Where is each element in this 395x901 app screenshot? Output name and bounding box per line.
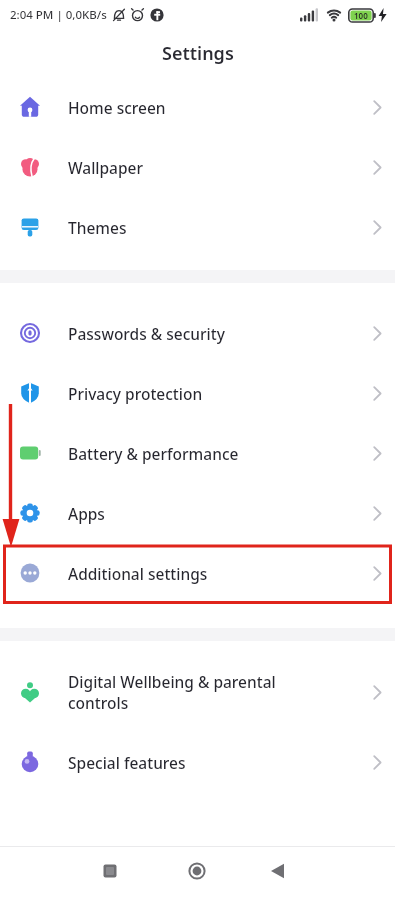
button[interactable]: Digital Wellbeing & parental controls xyxy=(0,660,395,724)
staticText: Privacy protection xyxy=(68,383,373,404)
button[interactable]: Additional settings xyxy=(0,543,395,603)
staticText: Special features xyxy=(68,752,373,773)
button[interactable] xyxy=(86,847,134,895)
button[interactable]: Privacy protection xyxy=(0,363,395,423)
staticText: Home screen xyxy=(68,97,373,118)
staticText: 100 xyxy=(354,10,368,21)
button[interactable]: Apps xyxy=(0,483,395,543)
staticText: Wallpaper xyxy=(68,157,373,178)
staticText: Settings xyxy=(162,41,234,66)
button[interactable]: Wallpaper xyxy=(0,137,395,197)
button[interactable]: Passwords & security xyxy=(0,303,395,363)
button[interactable] xyxy=(173,847,221,895)
button[interactable]: Battery & performance xyxy=(0,423,395,483)
staticText: Apps xyxy=(68,503,373,524)
button[interactable]: Special features xyxy=(0,732,395,792)
button[interactable] xyxy=(254,847,302,895)
staticText: Additional settings xyxy=(68,563,373,584)
staticText: Battery & performance xyxy=(68,443,373,464)
staticText: Passwords & security xyxy=(68,323,373,344)
staticText: Digital Wellbeing & parental controls xyxy=(68,671,373,714)
button[interactable]: Themes xyxy=(0,197,395,257)
button[interactable]: Home screen xyxy=(0,77,395,137)
staticText: 2:04 PM | 0,0KB/s xyxy=(10,7,107,23)
staticText: Themes xyxy=(68,217,373,238)
